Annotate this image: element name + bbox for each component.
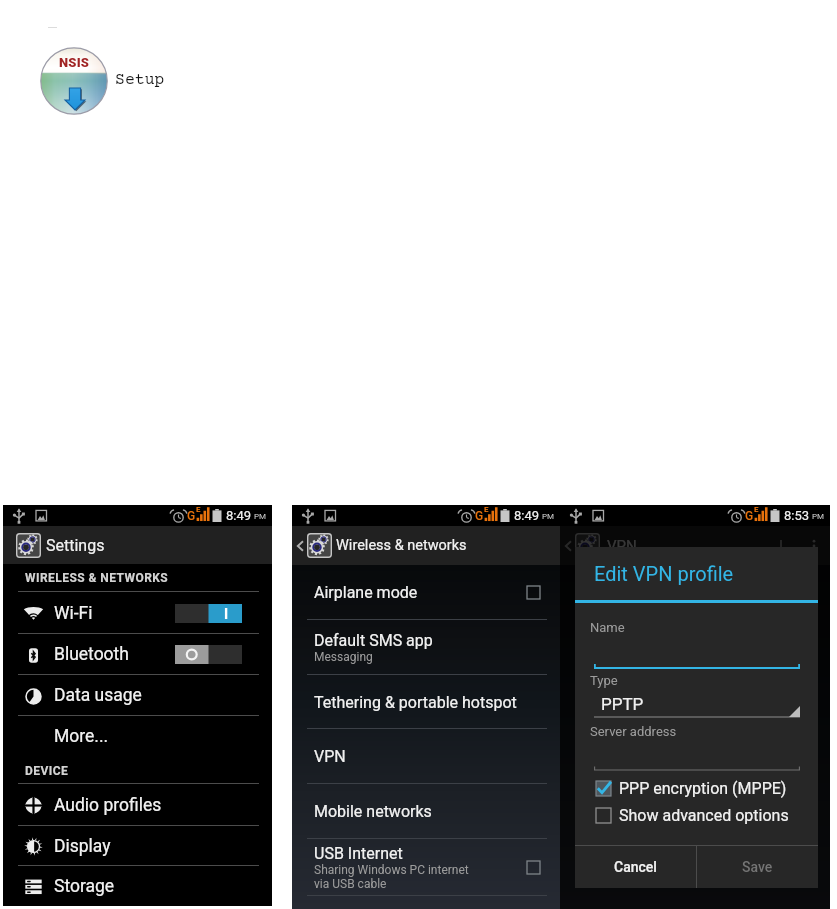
staticText: VPN (607, 537, 637, 555)
staticText: Airplane mode (314, 583, 418, 602)
staticText: 8:49 (514, 508, 540, 523)
staticText: G (475, 509, 484, 523)
button[interactable]: More options (803, 535, 825, 557)
staticText: USB Internet (314, 844, 403, 863)
staticText: Name (590, 620, 625, 635)
staticText: PM (812, 512, 825, 521)
button[interactable]: USB Internet (292, 839, 560, 896)
staticText: Save (742, 859, 773, 875)
staticText: Data usage (54, 685, 142, 706)
button[interactable]: USB Internet (527, 861, 540, 874)
staticText: Bluetooth (54, 644, 129, 665)
button[interactable]: Settings (3, 526, 272, 564)
staticText: Default SMS app (314, 631, 433, 650)
button[interactable]: Display (3, 826, 272, 866)
other: Back (563, 536, 573, 556)
button[interactable]: Mobile networks (292, 784, 560, 839)
button[interactable]: VPN (292, 729, 560, 784)
staticText: Audio profiles (54, 795, 162, 816)
staticText: PM (254, 512, 267, 521)
button[interactable]: Add VPN profile (768, 533, 794, 559)
button[interactable]: Tethering & portable hotspot (292, 675, 560, 729)
staticText: PPTP (601, 694, 644, 714)
button[interactable]: Wi-Fi (3, 592, 272, 634)
staticText: E (484, 505, 489, 514)
button[interactable]: PPTP (594, 693, 800, 719)
button[interactable]: Airplane mode (527, 586, 540, 599)
button[interactable]: Show advanced options (596, 806, 818, 825)
staticText: Wireless & networks (336, 537, 467, 554)
staticText: 8:53 (784, 508, 810, 523)
staticText: PPP encryption (MPPE) (619, 779, 787, 798)
staticText: E (196, 505, 201, 514)
staticText: Cancel (614, 859, 657, 875)
button[interactable]: Airplane mode (292, 565, 560, 620)
button[interactable]: Save (697, 846, 818, 888)
staticText: Display (54, 836, 111, 857)
button[interactable]: Cancel (575, 846, 696, 888)
staticText: Show advanced options (619, 806, 789, 825)
other: Back (295, 536, 305, 556)
button[interactable]: Data usage (3, 675, 272, 716)
button[interactable]: More... (3, 716, 272, 757)
staticText: PM (542, 512, 555, 521)
staticText: Wi-Fi (54, 603, 93, 624)
button[interactable]: Back (292, 526, 560, 565)
staticText: VPN (314, 747, 346, 766)
staticText: DEVICE (25, 764, 69, 778)
staticText: Server address (590, 724, 677, 739)
staticText: Tethering & portable hotspot (314, 693, 517, 712)
staticText: WIRELESS & NETWORKS (25, 571, 169, 585)
button[interactable]: Default SMS app (292, 620, 560, 675)
staticText: Type (590, 673, 618, 688)
staticText: E (754, 505, 759, 514)
staticText: NSIS (59, 55, 90, 70)
button[interactable]: Storage (3, 866, 272, 906)
staticText: Settings (46, 536, 105, 555)
staticText: Messaging (314, 650, 373, 664)
staticText: 8:49 (226, 508, 252, 523)
staticText: Setup (115, 71, 165, 90)
staticText: Storage (54, 876, 115, 897)
button[interactable]: PPP encryption (MPPE) (596, 779, 818, 798)
staticText: Sharing Windows PC internet via USB cabl… (314, 863, 469, 891)
button[interactable]: Audio profiles (3, 784, 272, 826)
staticText: Mobile networks (314, 802, 432, 821)
staticText: G (745, 509, 754, 523)
button[interactable]: Bluetooth (3, 634, 272, 675)
staticText: Edit VPN profile (594, 562, 734, 585)
staticText: G (187, 509, 196, 523)
staticText: More... (54, 726, 109, 747)
